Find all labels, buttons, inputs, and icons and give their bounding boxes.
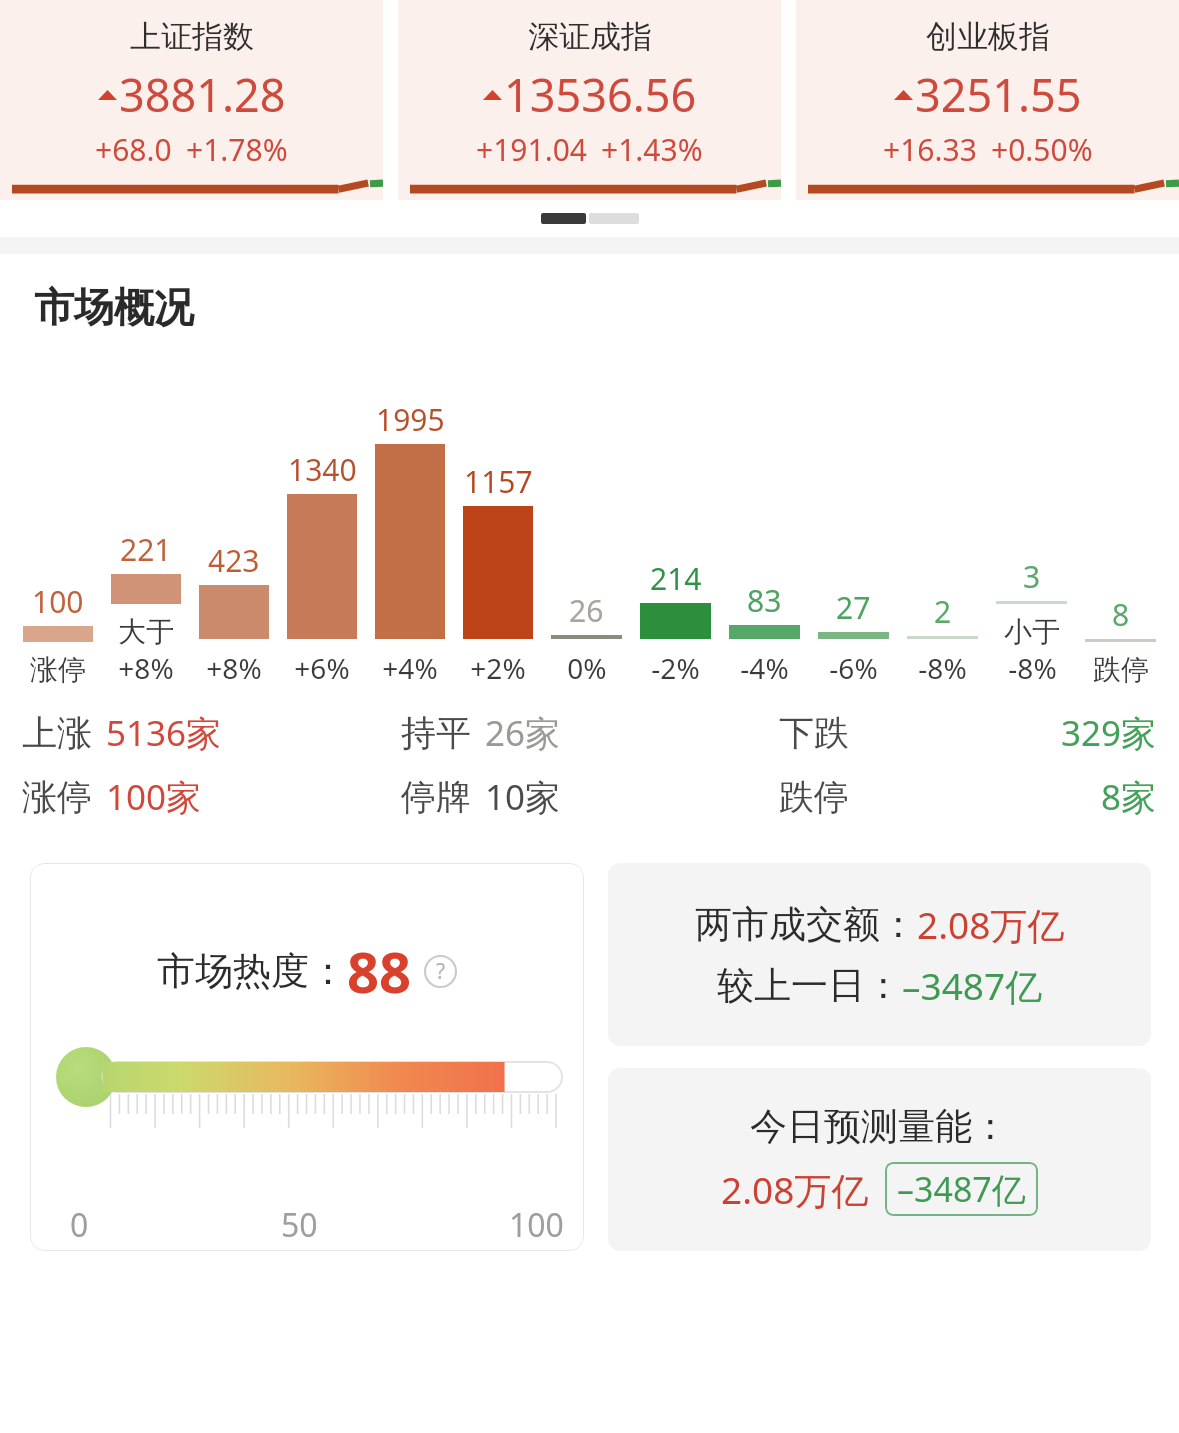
staticText: 423 — [208, 540, 260, 581]
staticText: +68.0 — [95, 129, 172, 170]
button[interactable]: 市场热度说明 — [424, 955, 457, 988]
staticText: 创业板指 — [926, 17, 1050, 56]
staticText: -6% — [829, 649, 878, 687]
staticText: 1995 — [376, 399, 445, 440]
button[interactable]: 市场热度： — [30, 863, 584, 1251]
staticText: +16.33 — [883, 129, 977, 170]
staticText: 221 — [120, 529, 172, 570]
staticText: 停牌 — [401, 775, 471, 819]
staticText: 两市成交额： — [695, 901, 917, 948]
button[interactable]: 今日预测量能： — [608, 1068, 1151, 1251]
staticText: 2.08万亿 — [917, 899, 1065, 950]
staticText: –3487亿 — [902, 960, 1043, 1011]
staticText: 2 — [934, 591, 952, 632]
staticText: -2% — [651, 649, 700, 687]
staticText: 5136家 — [106, 709, 222, 757]
staticText: 深证成指 — [528, 17, 652, 56]
staticText: 27 — [836, 587, 871, 628]
staticText: 2.08万亿 — [721, 1164, 869, 1215]
staticText: 较上一日： — [717, 962, 902, 1009]
staticText: 100家 — [106, 773, 202, 821]
button[interactable]: 深证成指 — [398, 0, 781, 200]
staticText: 上涨 — [22, 711, 92, 755]
staticText: 涨停 — [22, 775, 92, 819]
staticText: 26 — [569, 590, 604, 631]
button[interactable]: 上证指数 — [0, 0, 383, 200]
staticText: 26家 — [485, 709, 561, 757]
staticText: 83 — [747, 580, 782, 621]
staticText: 小于 — [1004, 614, 1060, 649]
staticText: -8% — [918, 649, 967, 687]
staticText: 214 — [650, 558, 702, 599]
staticText: 10家 — [485, 773, 561, 821]
staticText: 持平 — [401, 711, 471, 755]
staticText: +2% — [470, 649, 526, 687]
staticText: 下跌 — [779, 711, 849, 755]
staticText: -8% — [1008, 649, 1057, 687]
staticText: 1340 — [288, 449, 357, 490]
staticText: 100 — [509, 1203, 564, 1247]
staticText: 大于 — [118, 614, 174, 649]
button[interactable]: 创业板指 — [796, 0, 1179, 200]
staticText: –3487亿 — [897, 1166, 1026, 1212]
staticText: +8% — [118, 649, 174, 687]
staticText: 1157 — [464, 461, 533, 502]
staticText: 329家 — [1061, 709, 1157, 757]
staticText: 0 — [70, 1203, 89, 1247]
staticText: 100 — [32, 581, 84, 622]
staticText: 跌停 — [779, 775, 849, 819]
staticText: 8家 — [1101, 773, 1157, 821]
staticText: 今日预测量能： — [750, 1103, 1009, 1150]
staticText: 跌停 — [1093, 652, 1149, 687]
staticText: +1.43% — [601, 129, 703, 170]
staticText: -4% — [740, 649, 789, 687]
staticText: 3251.55 — [915, 64, 1082, 125]
staticText: 88 — [347, 933, 412, 1009]
staticText: 3881.28 — [119, 64, 286, 125]
staticText: +4% — [382, 649, 438, 687]
staticText: 市场热度： — [157, 947, 347, 995]
staticText: +1.78% — [186, 129, 288, 170]
staticText: ? — [436, 957, 446, 986]
staticText: 8 — [1112, 594, 1130, 635]
staticText: +0.50% — [991, 129, 1093, 170]
staticText: 0% — [567, 649, 607, 687]
staticText: 涨停 — [30, 652, 86, 687]
button[interactable]: 两市成交额： — [608, 863, 1151, 1046]
staticText: 上证指数 — [130, 17, 254, 56]
staticText: 50 — [281, 1203, 318, 1247]
staticText: 13536.56 — [504, 64, 697, 125]
staticText: +6% — [294, 649, 350, 687]
staticText: 市场概况 — [34, 282, 194, 332]
staticText: +191.04 — [476, 129, 587, 170]
staticText: 3 — [1023, 556, 1041, 597]
staticText: +8% — [206, 649, 262, 687]
